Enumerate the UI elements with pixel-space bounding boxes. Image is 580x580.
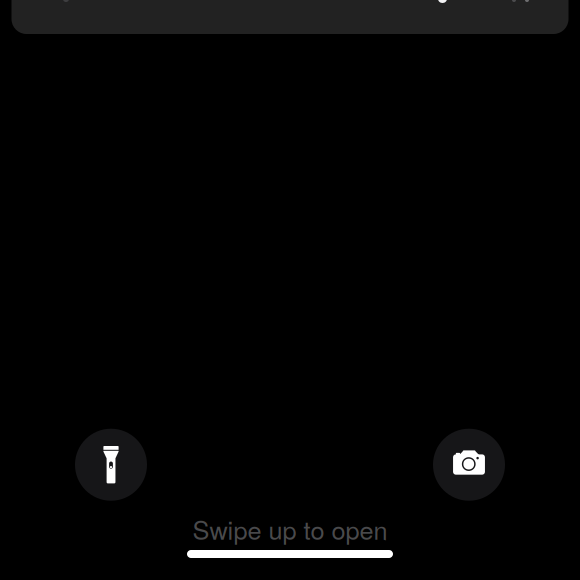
button[interactable]: Camera — [433, 429, 505, 501]
staticText: Swipe up to open — [192, 511, 387, 547]
button[interactable]: Flashlight — [75, 429, 147, 501]
